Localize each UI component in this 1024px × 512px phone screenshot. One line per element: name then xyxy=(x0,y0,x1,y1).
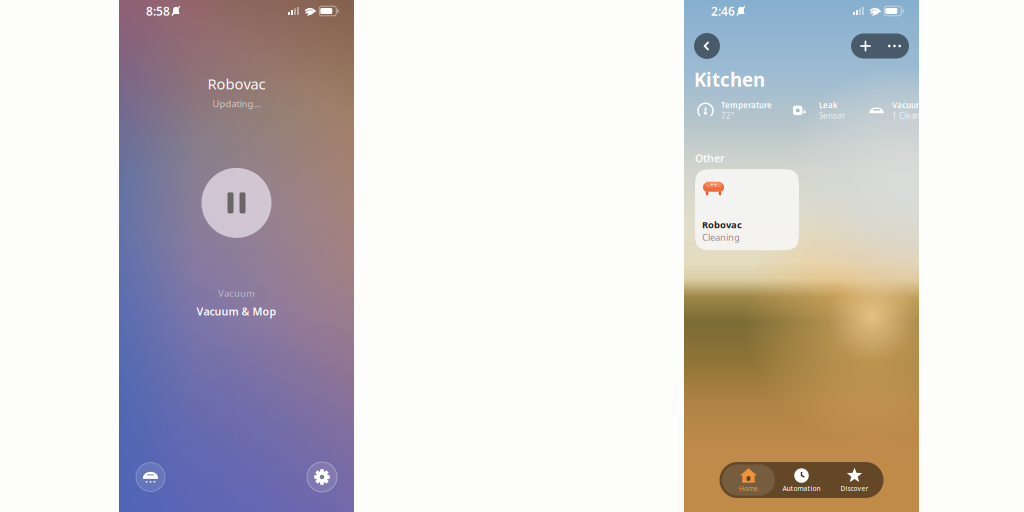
staticText: 2:46 xyxy=(711,3,735,19)
staticText: Vacuum xyxy=(892,100,924,110)
staticText: Kitchen xyxy=(694,67,765,92)
button[interactable]: Discover xyxy=(828,464,881,495)
staticText: Other xyxy=(695,151,725,165)
button[interactable]: Robovac xyxy=(136,462,165,491)
button[interactable]: More xyxy=(880,33,909,58)
button[interactable]: Add xyxy=(851,33,880,58)
staticText: Temperature xyxy=(721,100,772,110)
button[interactable]: Back xyxy=(694,33,720,59)
staticText: 8:58 xyxy=(146,3,170,19)
button[interactable]: Settings xyxy=(307,462,337,492)
staticText: Robovac xyxy=(702,218,742,231)
button[interactable]: Automation xyxy=(775,464,828,495)
staticText: Leak xyxy=(819,100,838,110)
staticText: Discover xyxy=(840,484,868,493)
staticText: Cleaning xyxy=(702,231,740,243)
button[interactable]: Pause xyxy=(201,168,271,238)
staticText: Robovac xyxy=(207,74,265,93)
staticText: Updating… xyxy=(212,97,260,110)
button[interactable]: Robovac xyxy=(695,169,799,250)
staticText: 72° xyxy=(721,110,734,121)
staticText: Vacuum xyxy=(218,287,255,299)
staticText: Sensor xyxy=(819,110,845,121)
button[interactable]: Home xyxy=(722,464,775,495)
staticText: Home xyxy=(739,484,758,493)
staticText: Vacuum & Mop xyxy=(196,304,276,318)
staticText: Automation xyxy=(782,484,820,493)
staticText: 1 Cleaning xyxy=(892,110,932,121)
